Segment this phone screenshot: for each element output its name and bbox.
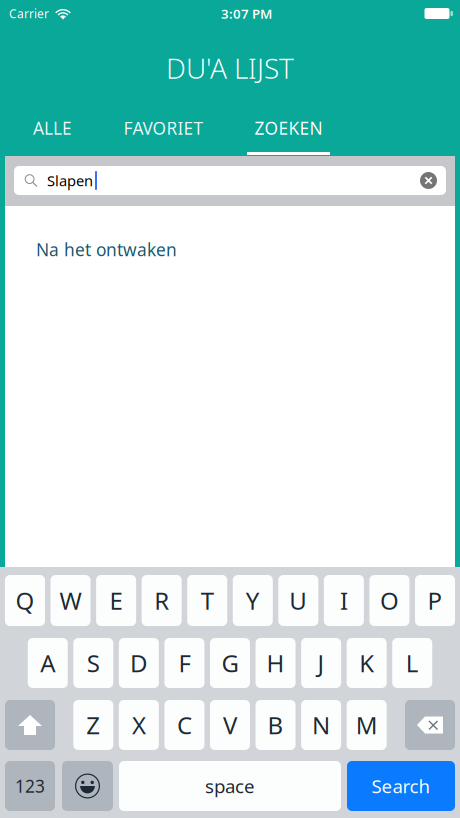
staticText: Search [371,774,430,798]
staticText: Slapen [47,171,93,190]
button[interactable]: R [142,575,182,626]
staticText: C [177,709,192,741]
button[interactable]: N [301,700,341,750]
button[interactable]: I [324,575,364,626]
button[interactable]: J [301,638,341,688]
button[interactable]: A [28,638,68,688]
staticText: Y [246,585,260,616]
staticText: K [359,647,374,679]
staticText: DU'A LIJST [166,49,294,87]
button[interactable]: FAVORIET [98,109,229,156]
staticText: U [289,585,307,616]
staticText: T [201,585,214,616]
button[interactable]: W [50,575,90,626]
button[interactable]: H [256,638,296,688]
button[interactable]: C [164,700,204,750]
button[interactable]: E [96,575,136,626]
button[interactable]: Shift [5,700,55,750]
staticText: M [356,709,378,741]
staticText: 3:07 PM [221,5,272,22]
button[interactable]: Na het ontwaken [5,206,455,293]
staticText: G [221,647,238,679]
staticText: Carrier [9,5,49,21]
staticText: I [340,585,348,616]
staticText: A [40,647,55,679]
staticText: ALLE [33,116,72,139]
staticText: space [205,774,255,798]
staticText: D [130,647,148,679]
button[interactable]: ZOEKEN [229,109,348,156]
staticText: FAVORIET [123,116,203,139]
button[interactable]: Y [233,575,273,626]
staticText: W [59,585,81,616]
button[interactable]: D [119,638,159,688]
staticText: J [318,647,325,679]
button[interactable]: L [392,638,432,688]
staticText: ZOEKEN [254,116,322,139]
button[interactable]: F [164,638,204,688]
staticText: N [312,709,330,741]
button[interactable]: U [278,575,318,626]
button[interactable]: V [210,700,250,750]
button[interactable]: B [256,700,296,750]
staticText: P [427,585,442,616]
button[interactable]: 123 [5,761,55,811]
staticText: E [110,585,123,616]
button[interactable]: P [415,575,455,626]
button[interactable]: X [119,700,159,750]
button[interactable]: Delete [405,700,455,750]
button[interactable]: S [73,638,113,688]
staticText: Q [15,585,34,616]
staticText: X [132,709,146,741]
staticText: R [154,585,169,616]
staticText: L [406,647,419,679]
staticText: Na het ontwaken [36,238,177,261]
button[interactable]: T [187,575,227,626]
button[interactable]: space [119,761,341,811]
button[interactable]: Search [347,761,455,811]
staticText: V [223,709,237,741]
button[interactable]: M [347,700,387,750]
button[interactable]: G [210,638,250,688]
staticText: F [178,647,190,679]
button[interactable]: K [347,638,387,688]
staticText: B [268,709,284,741]
staticText: Z [86,709,100,741]
staticText: 123 [15,774,45,797]
button[interactable]: Emoji [62,761,113,811]
button[interactable]: ALLE [7,109,98,156]
staticText: H [267,647,285,679]
staticText: S [87,647,100,679]
button[interactable]: Z [73,700,113,750]
staticText: O [380,585,399,616]
button[interactable]: O [369,575,409,626]
button[interactable]: Q [5,575,45,626]
